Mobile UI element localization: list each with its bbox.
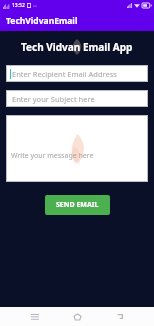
staticText: Write your message here <box>11 151 94 161</box>
staticText: TechVidvanEmail <box>6 15 78 27</box>
staticText: Enter Recipient Email Address <box>12 69 117 79</box>
button[interactable]: Enter Recipient Email Address <box>6 65 148 82</box>
button[interactable]: TechVidvanEmail <box>0 11 154 31</box>
staticText: Tech Vidvan Email App <box>21 40 133 54</box>
button[interactable]: SEND EMAIL <box>45 195 110 215</box>
staticText: 13:52 <box>12 2 25 9</box>
button[interactable]: Enter your Subject here <box>6 90 148 107</box>
button[interactable]: Recents <box>27 309 43 325</box>
staticText: SEND EMAIL <box>56 200 99 210</box>
button[interactable]: Home <box>69 309 85 325</box>
button[interactable]: Write your message here <box>6 115 148 182</box>
button[interactable]: Back <box>112 309 128 325</box>
staticText: Enter your Subject here <box>12 94 95 104</box>
